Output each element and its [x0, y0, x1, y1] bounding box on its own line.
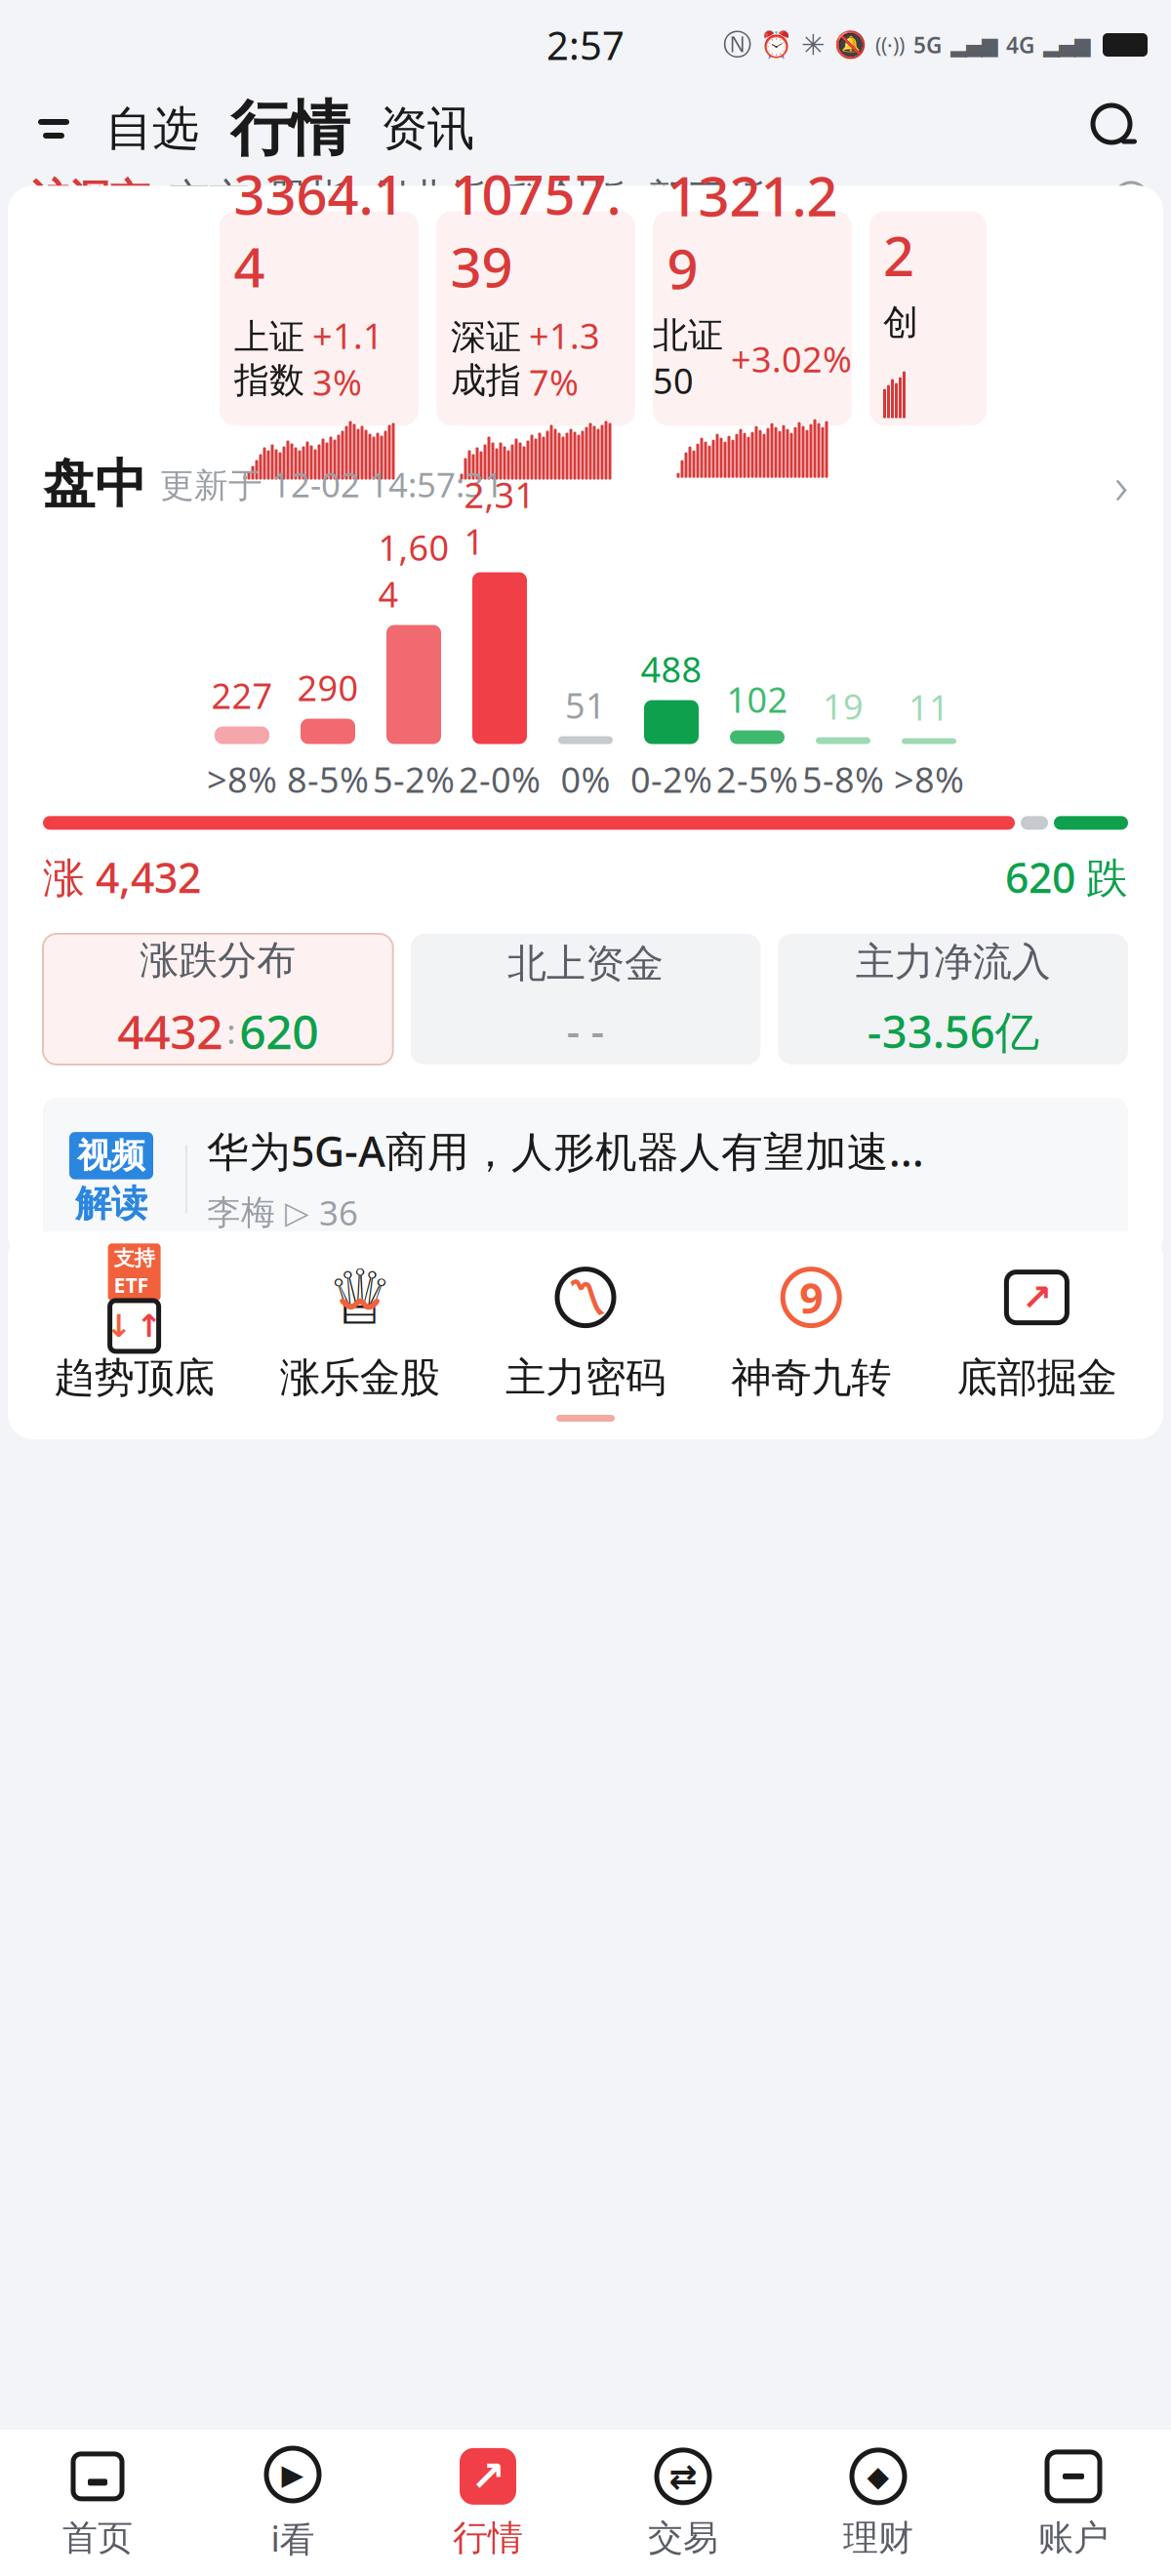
button[interactable]: 主力净流入 [778, 934, 1128, 1065]
staticText: 支持ETF [114, 1245, 155, 1299]
button[interactable]: 账户 [976, 2435, 1171, 2571]
staticText: 5-8% [802, 756, 884, 802]
button[interactable]: ♕ [247, 1253, 473, 1409]
staticText: 2-0% [459, 756, 541, 802]
staticText: 资讯 [381, 100, 474, 158]
staticText: ▂▄▆ [1043, 33, 1090, 57]
staticText: ▶ [282, 2458, 304, 2491]
button[interactable]: 3364.14 [220, 211, 419, 426]
staticText: 沪深京 [29, 174, 149, 224]
staticText: ▂▄▆ [950, 33, 997, 57]
button[interactable]: 股指 [259, 171, 358, 227]
button[interactable]: 涨跌分布 [43, 934, 393, 1065]
staticText: 涨乐金股 [280, 1353, 440, 1403]
staticText: 2:57 [546, 19, 625, 71]
staticText: 上证指数 [234, 316, 304, 402]
staticText: 620 [239, 1000, 318, 1062]
staticText: 5-2% [373, 756, 455, 802]
staticText: ▷ [285, 1195, 309, 1230]
staticText: 解读 [75, 1181, 147, 1226]
staticText: 19 [823, 683, 864, 729]
button[interactable]: 资讯 [363, 97, 492, 161]
staticText: 主力密码 [505, 1353, 666, 1403]
button[interactable]: 科创板 [498, 171, 637, 227]
button[interactable]: ⇄ [585, 2435, 781, 2571]
button[interactable]: 10757.39 [436, 211, 635, 426]
staticText: ↗ [1022, 1277, 1052, 1318]
staticText: 2 [883, 219, 914, 291]
button[interactable]: 自选 [88, 97, 217, 161]
staticText: >8% [207, 756, 277, 802]
staticText: 1,604 [378, 524, 449, 617]
staticText: 账户 [1038, 2516, 1109, 2560]
staticText: 涨 4,432 [43, 849, 201, 905]
staticText: 创 [883, 301, 918, 344]
button[interactable]: 支持ETF [21, 1253, 247, 1409]
button[interactable]: ↗ [924, 1253, 1150, 1409]
button[interactable]: 京市 [159, 171, 259, 227]
staticText: +1.37% [529, 312, 600, 405]
button[interactable]: 2 [869, 211, 987, 426]
staticText: 8-5% [287, 756, 369, 802]
staticText: 北上资金 [507, 940, 664, 988]
staticText: 趋势顶底 [54, 1353, 214, 1403]
staticText: 〽 [566, 1278, 605, 1316]
button[interactable]: 盘中 [8, 445, 1163, 523]
button[interactable]: 〽 [473, 1253, 698, 1409]
staticText: 自选 [105, 100, 199, 158]
staticText: ♕ [326, 1255, 394, 1340]
staticText: ⏰ [760, 30, 792, 60]
button[interactable]: 1321.29 [653, 211, 852, 426]
staticText: 深证成指 [451, 316, 521, 402]
staticText: › [1114, 450, 1128, 519]
staticText: 51 [565, 682, 606, 728]
button[interactable]: ↗ [390, 2435, 585, 2571]
staticText: 交易 [648, 2516, 718, 2560]
staticText: 10757.39 [450, 157, 621, 302]
button[interactable]: 搜索 [1079, 97, 1153, 161]
staticText: -33.56亿 [867, 1002, 1039, 1060]
staticText: 3364.14 [234, 157, 404, 302]
button[interactable]: ▶ [195, 2435, 390, 2571]
button[interactable]: 菜单 [20, 97, 88, 161]
staticText: 新三板 [647, 174, 767, 224]
button[interactable]: 北上资金 [411, 934, 761, 1065]
staticText: 李梅 [207, 1192, 275, 1233]
staticText: 创业板 [368, 174, 488, 224]
staticText: 首页 [62, 2516, 133, 2560]
staticText: 620 跌 [1005, 849, 1128, 905]
button[interactable]: ◆ [781, 2435, 976, 2571]
staticText: 9 [799, 1270, 823, 1325]
button[interactable]: 创业板 [358, 171, 498, 227]
staticText: Ⓝ [723, 27, 751, 62]
staticText: 4G [1006, 30, 1034, 60]
button[interactable]: 新三板 [637, 171, 777, 227]
staticText: 290 [297, 664, 359, 711]
button[interactable]: 行情 [217, 97, 363, 161]
staticText: 2-5% [716, 756, 798, 802]
staticText: 盘中 [43, 452, 146, 516]
button[interactable]: 编辑板块 [1099, 171, 1163, 227]
staticText: ↗ [470, 2453, 505, 2500]
staticText: >8% [894, 756, 964, 802]
staticText: 股指 [268, 174, 348, 224]
staticText: 科创板 [507, 174, 627, 224]
staticText: ◆ [867, 2460, 889, 2493]
staticText: 京市 [169, 174, 249, 224]
staticText: 1321.29 [667, 159, 838, 304]
staticText: 华为5G-A商用，人形机器人有望加速... [207, 1123, 924, 1178]
staticText: 🔕 [834, 30, 867, 60]
button[interactable]: 首页 [0, 2435, 195, 2571]
staticText: 0% [561, 756, 610, 802]
staticText: 2,311 [464, 471, 535, 564]
staticText: 主力净流入 [856, 938, 1051, 986]
staticText: 视频 [77, 1135, 145, 1176]
staticText: 北证50 [653, 314, 723, 404]
staticText: +1.13% [312, 312, 384, 405]
button[interactable]: 9 [698, 1253, 924, 1409]
staticText: 理财 [843, 2516, 913, 2560]
staticText: 涨跌分布 [140, 936, 296, 984]
button[interactable]: 沪深京 [20, 171, 159, 227]
staticText: 行情 [453, 2516, 523, 2560]
button[interactable]: 视频 [43, 1098, 1128, 1260]
